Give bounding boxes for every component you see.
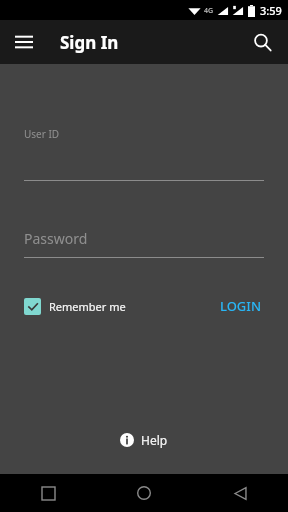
staticText: User ID <box>24 127 60 141</box>
button[interactable]: Help <box>112 428 176 452</box>
button[interactable]: Recent apps <box>0 474 96 512</box>
staticText: Sign In <box>60 31 119 54</box>
staticText: 3:59 <box>260 3 282 18</box>
button[interactable]: Search <box>242 22 282 62</box>
staticText: LOGIN <box>220 297 262 315</box>
button[interactable]: Open navigation menu <box>6 24 42 60</box>
staticText: Remember me <box>49 299 126 314</box>
button[interactable]: Back <box>192 474 288 512</box>
staticText: 4G <box>204 6 214 16</box>
button[interactable]: LOGIN <box>216 293 266 319</box>
button[interactable]: Home <box>96 474 192 512</box>
button[interactable]: Remember me <box>24 296 126 317</box>
staticText: Help <box>141 432 168 448</box>
staticText: Password <box>24 229 88 248</box>
